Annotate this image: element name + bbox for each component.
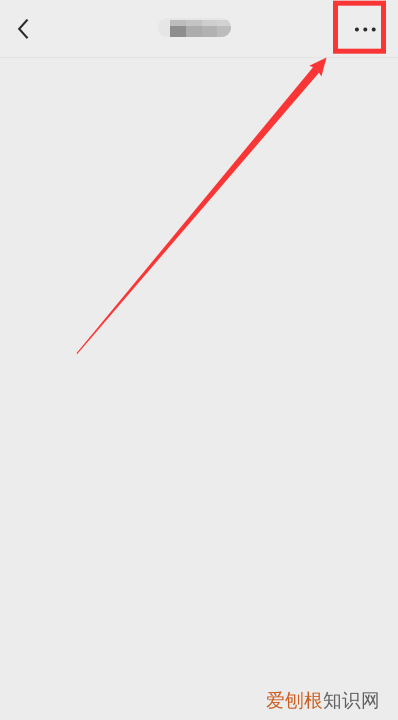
staticText: 爱刨根 <box>266 689 323 712</box>
button[interactable]: Back <box>0 0 44 44</box>
staticText: 知识网 <box>323 689 380 712</box>
button[interactable]: More options <box>336 3 384 51</box>
